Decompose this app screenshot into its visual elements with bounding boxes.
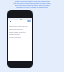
staticText: Page range selection: [9, 31, 26, 33]
staticText: Export PDF documents from the mobile app: [15, 0, 50, 2]
button[interactable]: Export: [27, 20, 31, 22]
button[interactable]: Document settings and export options: [9, 24, 32, 27]
staticText: Output format: [9, 36, 21, 38]
staticText: Image quality: [9, 33, 20, 35]
staticText: Document settings and export options: [9, 25, 32, 27]
staticText: File name format: [9, 28, 23, 30]
button[interactable]: Menu: [9, 20, 11, 22]
button[interactable]: Output format: [9, 35, 32, 38]
staticText: members in just a couple of simple taps: [16, 6, 48, 8]
staticText: Use the built-in document editor to expo…: [13, 2, 51, 4]
button[interactable]: Page range selection: [9, 30, 32, 33]
button[interactable]: File name format: [9, 27, 32, 30]
staticText: files and share them instantly with the …: [15, 4, 50, 6]
button[interactable]: Image quality: [9, 32, 32, 35]
